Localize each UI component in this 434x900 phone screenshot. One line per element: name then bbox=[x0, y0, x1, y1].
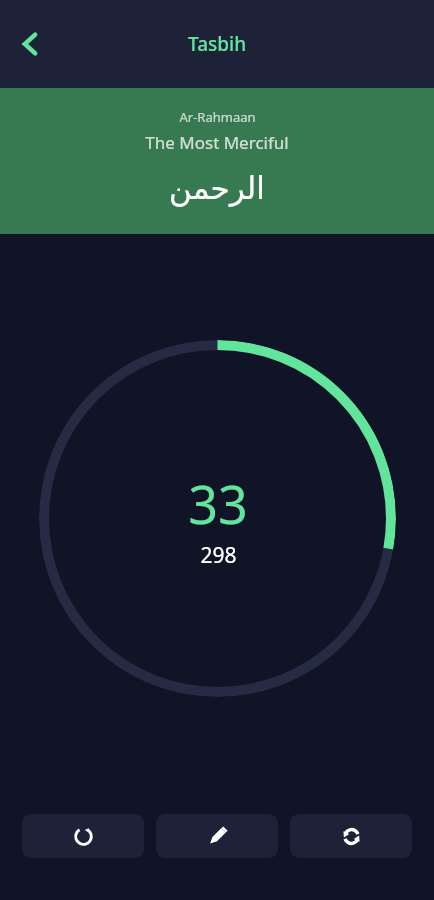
button[interactable]: Back bbox=[6, 20, 54, 68]
staticText: Tasbih bbox=[188, 31, 247, 57]
staticText: Ar-Rahmaan bbox=[179, 108, 256, 126]
staticText: 33 bbox=[188, 468, 248, 539]
button[interactable]: Change dhikr bbox=[290, 814, 412, 858]
staticText: 298 bbox=[200, 541, 237, 570]
button[interactable]: Tap to count bbox=[39, 340, 396, 697]
staticText: The Most Merciful bbox=[145, 131, 289, 154]
button[interactable]: Edit bbox=[156, 814, 278, 858]
button[interactable]: Reset counter bbox=[22, 814, 144, 858]
staticText: الرحمن bbox=[169, 170, 265, 206]
